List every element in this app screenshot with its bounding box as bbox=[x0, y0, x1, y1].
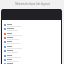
button[interactable] bbox=[2, 45, 61, 49]
button[interactable] bbox=[2, 36, 61, 40]
button[interactable] bbox=[2, 62, 61, 64]
button[interactable] bbox=[2, 58, 61, 62]
button[interactable] bbox=[2, 54, 61, 58]
button[interactable] bbox=[2, 49, 61, 53]
button[interactable] bbox=[2, 32, 61, 36]
button[interactable] bbox=[2, 40, 61, 44]
staticText: Material inbox list layout bbox=[15, 2, 50, 6]
button[interactable] bbox=[2, 23, 61, 27]
button[interactable] bbox=[2, 27, 61, 31]
